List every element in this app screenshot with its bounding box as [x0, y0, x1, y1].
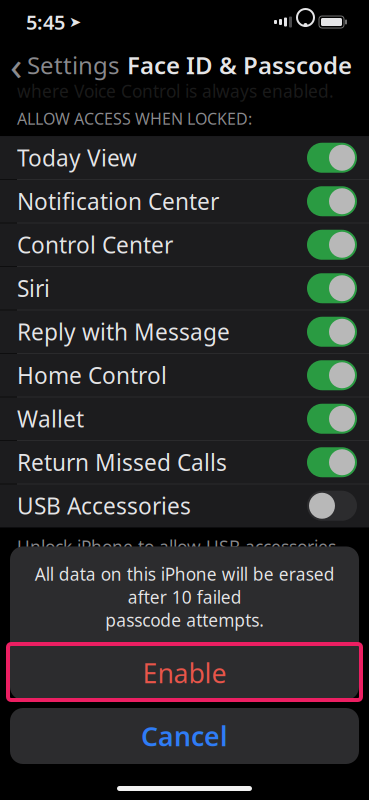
button[interactable]: Notification Center [0, 179, 369, 223]
button[interactable]: Home Control [0, 353, 369, 397]
staticText: Wallet [17, 404, 84, 434]
staticText: ➤ [69, 14, 81, 30]
staticText: ‹ [10, 38, 22, 91]
button[interactable]: Control Center [0, 223, 369, 266]
staticText: ALLOW ACCESS WHEN LOCKED: [17, 108, 252, 129]
staticText: Today View [17, 143, 137, 173]
staticText: All data on this iPhone will be erased a… [34, 562, 334, 631]
button[interactable]: ‹ [0, 45, 127, 85]
staticText: Reply with Message [17, 317, 230, 347]
button[interactable]: Today View [0, 136, 369, 179]
staticText: Control Center [17, 230, 173, 260]
button[interactable]: Enable [10, 646, 359, 700]
button[interactable]: Cancel [10, 708, 359, 764]
button[interactable]: USB Accessories [0, 484, 369, 527]
staticText: USB Accessories [17, 491, 191, 521]
button[interactable]: Return Missed Calls [0, 440, 369, 484]
button[interactable]: Siri [0, 266, 369, 310]
staticText: Notification Center [17, 186, 219, 216]
staticText: Settings [27, 49, 119, 81]
staticText: where Voice Control is always enabled. [17, 79, 334, 102]
staticText: Home Control [17, 360, 167, 390]
staticText: Face ID & Passcode [127, 49, 352, 81]
staticText: Enable [142, 655, 226, 691]
button[interactable]: Wallet [0, 397, 369, 440]
staticText: Siri [17, 273, 50, 303]
staticText: 5:45 [26, 9, 65, 35]
staticText: Cancel [141, 718, 228, 754]
button[interactable]: Reply with Message [0, 310, 369, 353]
staticText: Return Missed Calls [17, 447, 227, 477]
staticText: Unlock iPhone to allow USB accessories t… [17, 535, 336, 650]
